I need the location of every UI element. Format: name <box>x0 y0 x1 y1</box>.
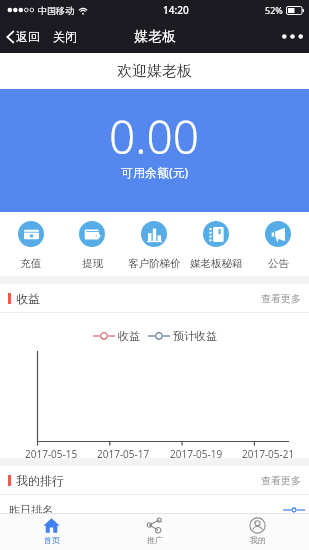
staticText: 预计收益 <box>173 329 217 343</box>
staticText: 0.00 <box>109 105 200 168</box>
staticText: 欢迎媒老板 <box>117 62 192 81</box>
staticText: 收益 <box>118 329 140 343</box>
staticText: 收益 <box>16 291 40 306</box>
staticText: 昨日排名 <box>9 503 53 513</box>
button[interactable]: 媒老板秘籍 <box>185 212 247 276</box>
staticText: 提现 <box>82 257 103 270</box>
button[interactable]: 提现 <box>61 212 123 276</box>
staticText: 充值 <box>20 257 41 270</box>
staticText: 首页 <box>44 535 60 545</box>
staticText: 2017-05-17 <box>97 447 150 461</box>
button[interactable]: 查看更多 <box>261 292 301 305</box>
staticText: 14:20 <box>163 3 189 17</box>
staticText: 公告 <box>268 257 289 270</box>
staticText: 可用余额(元) <box>121 164 189 180</box>
button[interactable]: 推广 <box>103 514 206 550</box>
staticText: 2017-05-15 <box>25 447 78 461</box>
staticText: 我的 <box>250 535 266 545</box>
staticText: 媒老板秘籍 <box>190 257 243 270</box>
button[interactable]: 公告 <box>247 212 309 276</box>
staticText: 客户阶梯价 <box>128 257 181 270</box>
staticText: 我的排行 <box>16 473 64 488</box>
button[interactable]: 关闭 <box>53 20 77 53</box>
button[interactable]: 首页 <box>0 514 103 550</box>
button[interactable]: More options <box>275 20 309 53</box>
button[interactable]: 充值 <box>0 212 61 276</box>
button[interactable]: 查看更多 <box>261 474 301 487</box>
staticText: 关闭 <box>53 29 77 44</box>
staticText: 52% <box>265 4 283 16</box>
button[interactable]: 我的 <box>206 514 309 550</box>
button[interactable]: 客户阶梯价 <box>123 212 185 276</box>
staticText: 2017-05-19 <box>170 447 223 461</box>
staticText: 媒老板 <box>134 28 176 46</box>
staticText: 中国移动 <box>38 5 74 16</box>
staticText: 推广 <box>147 535 163 545</box>
button[interactable]: 返回 <box>0 20 43 53</box>
staticText: 返回 <box>16 29 40 44</box>
staticText: 2017-05-21 <box>242 447 295 461</box>
